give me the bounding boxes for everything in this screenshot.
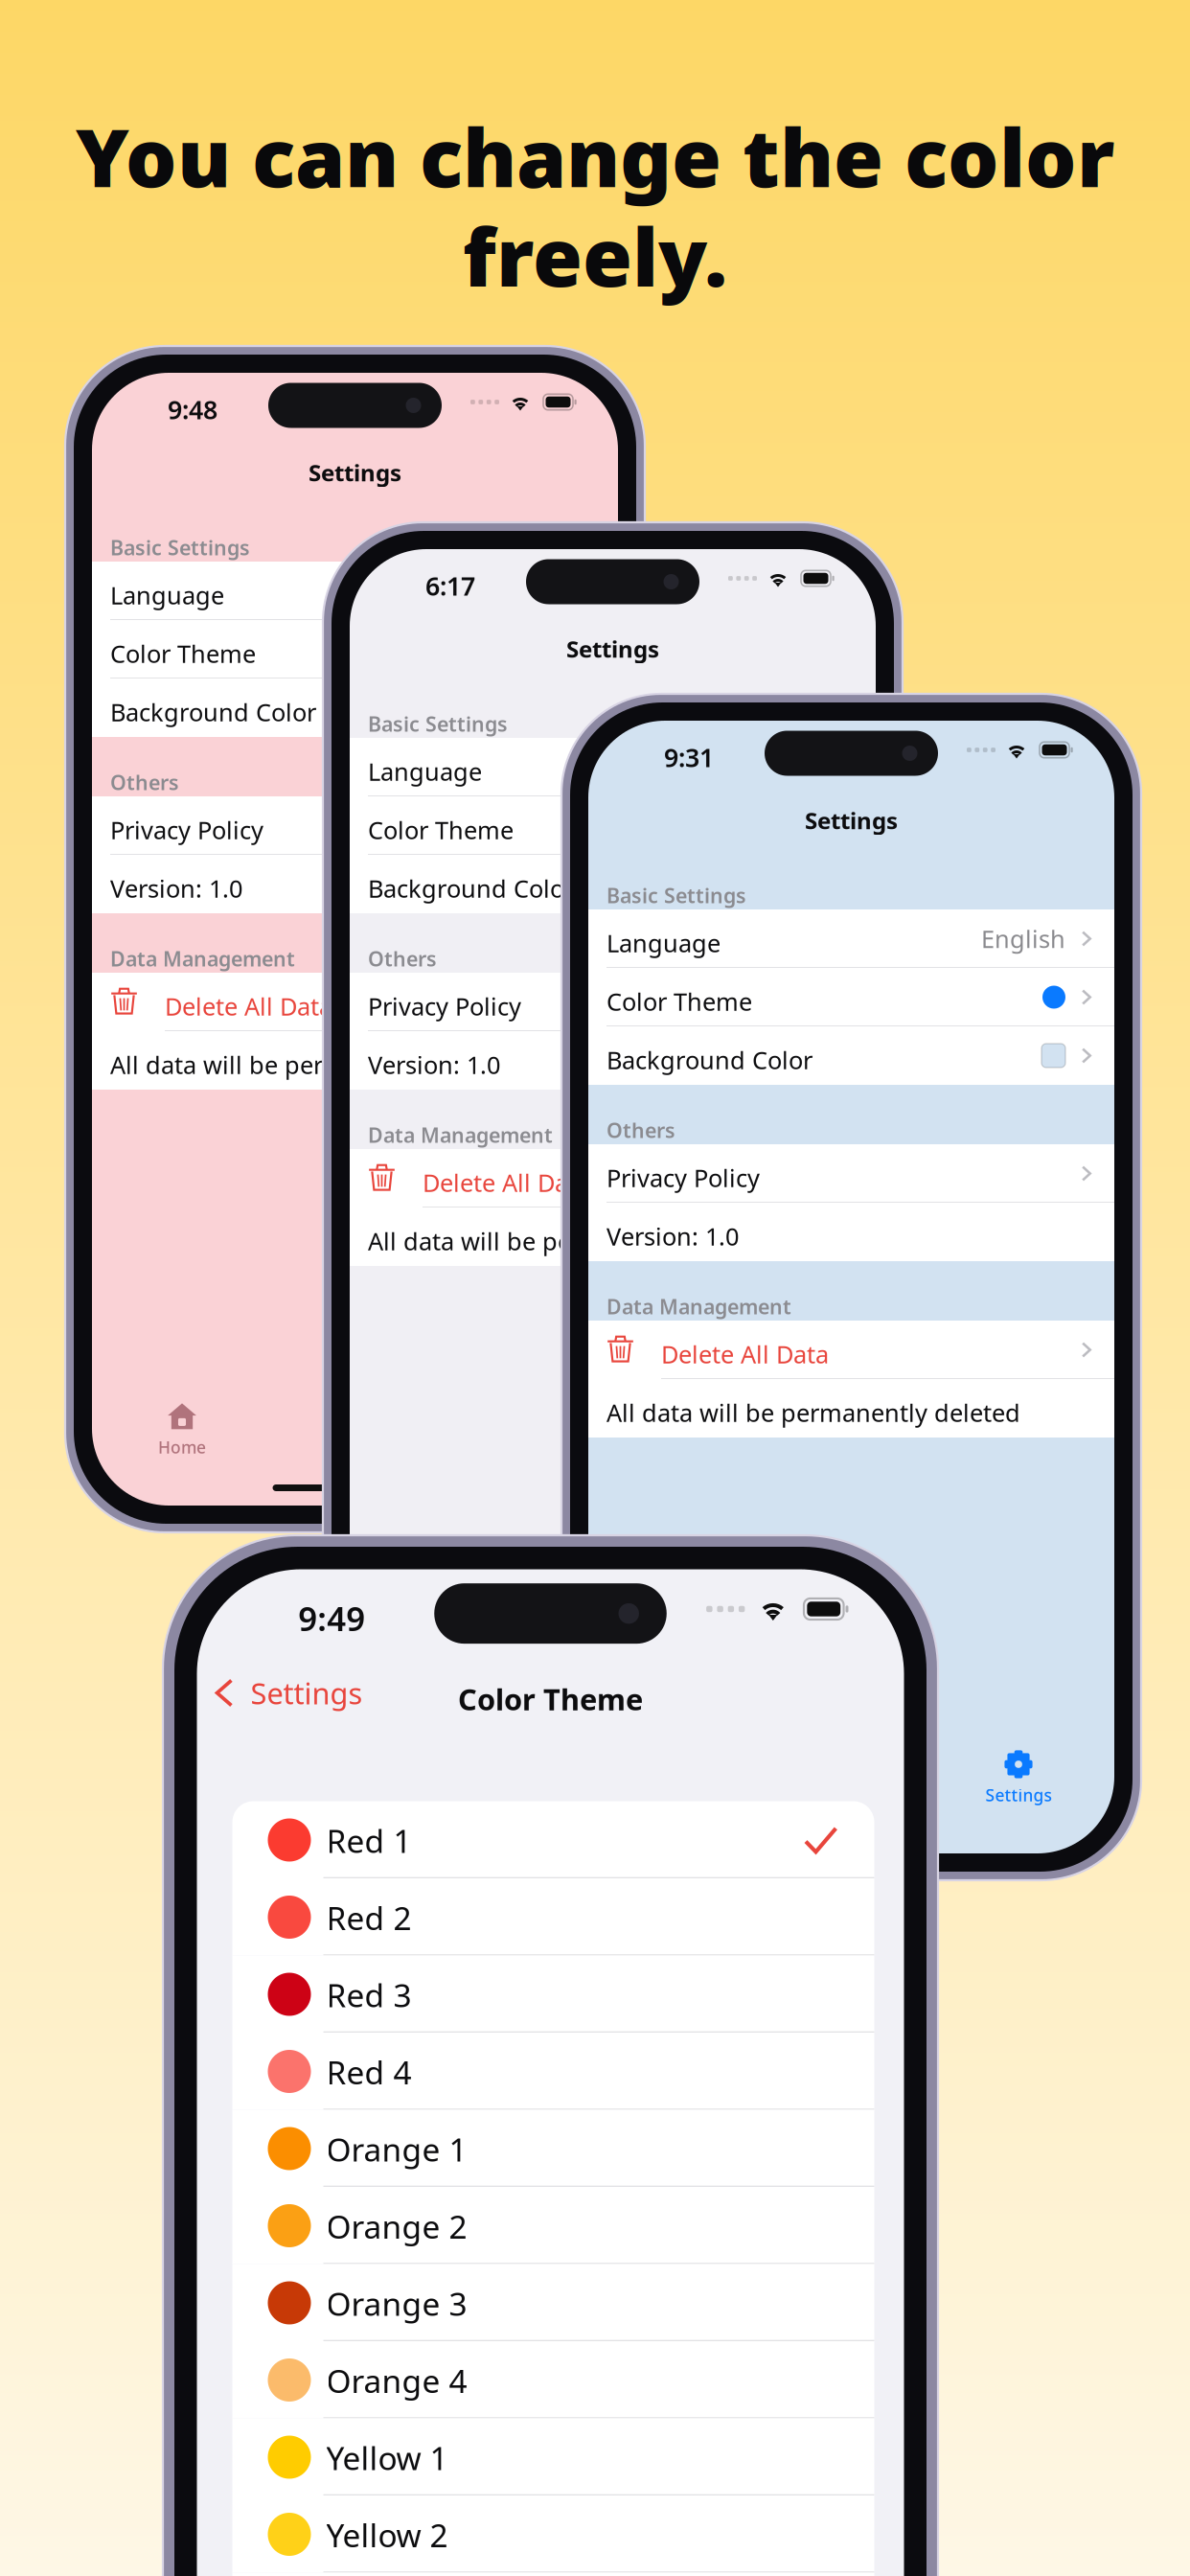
staticText: Language <box>368 755 482 787</box>
button[interactable]: Orange 4 <box>232 2341 874 2418</box>
staticText: Background Color <box>368 872 574 904</box>
staticText: Home <box>158 1436 206 1458</box>
button[interactable]: Delete All Data <box>350 1149 876 1207</box>
staticText: Data Management <box>606 1293 791 1320</box>
staticText: Red 3 <box>326 1974 412 2016</box>
staticText: Delete All Data <box>165 990 332 1022</box>
button[interactable]: Yellow 3 <box>232 2573 874 2576</box>
staticText: Language <box>110 579 224 611</box>
button[interactable]: Yellow 1 <box>232 2418 874 2495</box>
staticText: freely. <box>463 202 727 309</box>
staticText: Yellow 2 <box>326 2514 448 2556</box>
staticText: Red 2 <box>326 1897 412 1939</box>
button[interactable]: Color Theme <box>350 796 876 855</box>
staticText: Data Management <box>110 945 295 972</box>
staticText: Background Color <box>606 1044 812 1076</box>
staticText: Delete All Data <box>661 1338 829 1370</box>
staticText: Settings <box>805 805 898 836</box>
staticText: Others <box>368 945 437 972</box>
button[interactable]: Delete All Data <box>588 1321 1114 1379</box>
staticText: English <box>981 923 1065 955</box>
staticText: Settings <box>251 1673 363 1712</box>
button[interactable]: Settings <box>192 1667 380 1719</box>
button[interactable]: All data will be permanently deleted <box>350 1207 876 1266</box>
button[interactable]: Red 1 <box>232 1801 874 1878</box>
staticText: Basic Settings <box>110 534 250 561</box>
staticText: Settings <box>309 457 401 488</box>
button[interactable]: Yellow 2 <box>232 2495 874 2573</box>
staticText: Color Theme <box>458 1679 643 1718</box>
staticText: Orange 3 <box>326 2282 467 2325</box>
staticText: Orange 1 <box>326 2128 467 2170</box>
button[interactable]: Background Color <box>350 855 876 913</box>
staticText: Basic Settings <box>368 710 508 737</box>
staticText: All data will be permanently deleted <box>110 1048 524 1081</box>
button[interactable]: Background Color <box>588 1026 1114 1085</box>
staticText: You can change the color <box>76 103 1114 209</box>
staticText: Orange 2 <box>326 2205 467 2248</box>
button[interactable]: Settings <box>961 1748 1076 1807</box>
button[interactable]: Version: 1.0 <box>92 855 618 913</box>
staticText: Red 1 <box>326 1819 412 1862</box>
button[interactable]: Delete All Data <box>92 973 618 1031</box>
staticText: Color Theme <box>110 637 256 669</box>
staticText: Settings <box>566 633 659 664</box>
staticText: Delete All Data <box>423 1166 590 1198</box>
staticText: Red 4 <box>326 2051 412 2093</box>
button[interactable]: Color Theme <box>92 620 618 678</box>
staticText: Version: 1.0 <box>110 872 242 904</box>
button[interactable]: Orange 1 <box>232 2110 874 2187</box>
button[interactable]: Privacy Policy <box>350 973 876 1031</box>
button[interactable]: Color Theme <box>588 968 1114 1026</box>
staticText: All data will be permanently deleted <box>606 1396 1020 1428</box>
staticText: Basic Settings <box>606 882 746 909</box>
button[interactable]: Red 3 <box>232 1955 874 2033</box>
staticText: 9:31 <box>664 740 714 774</box>
button[interactable]: Language <box>92 562 618 620</box>
button[interactable]: Red 2 <box>232 1878 874 1955</box>
button[interactable]: Language <box>588 909 1114 968</box>
staticText: Orange 4 <box>326 2359 467 2402</box>
staticText: All data will be permanently deleted <box>368 1225 782 1257</box>
staticText: Others <box>606 1116 675 1144</box>
button[interactable]: Version: 1.0 <box>588 1203 1114 1261</box>
button[interactable]: Orange 2 <box>232 2187 874 2264</box>
staticText: Settings <box>985 1784 1052 1806</box>
button[interactable]: Version: 1.0 <box>350 1031 876 1090</box>
button[interactable]: Language <box>350 738 876 796</box>
button[interactable]: Privacy Policy <box>92 796 618 855</box>
staticText: Color Theme <box>606 985 752 1017</box>
button[interactable]: All data will be permanently deleted <box>588 1379 1114 1437</box>
button[interactable]: All data will be permanently deleted <box>92 1031 618 1090</box>
button[interactable]: Orange 3 <box>232 2264 874 2341</box>
button[interactable]: Home <box>125 1400 240 1460</box>
staticText: Color Theme <box>368 814 514 846</box>
staticText: Privacy Policy <box>606 1161 760 1194</box>
staticText: Yellow 1 <box>326 2437 448 2479</box>
staticText: 9:49 <box>298 1596 365 1640</box>
staticText: Privacy Policy <box>110 814 263 846</box>
staticText: Version: 1.0 <box>368 1048 500 1081</box>
button[interactable]: Privacy Policy <box>588 1144 1114 1203</box>
staticText: Version: 1.0 <box>606 1220 739 1252</box>
staticText: Privacy Policy <box>368 990 521 1022</box>
staticText: 6:17 <box>425 569 475 603</box>
staticText: Others <box>110 769 179 796</box>
button[interactable]: Red 4 <box>232 2033 874 2110</box>
button[interactable]: Background Color <box>92 678 618 737</box>
staticText: 9:48 <box>168 392 217 426</box>
staticText: Data Management <box>368 1121 553 1148</box>
staticText: Background Color <box>110 696 316 728</box>
staticText: Language <box>606 927 721 959</box>
